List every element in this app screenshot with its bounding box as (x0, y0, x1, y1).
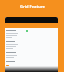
button[interactable]: Open (6, 65, 9, 66)
staticText: Grid Feature (20, 4, 45, 9)
button[interactable]: Grid Feature (0, 0, 64, 13)
